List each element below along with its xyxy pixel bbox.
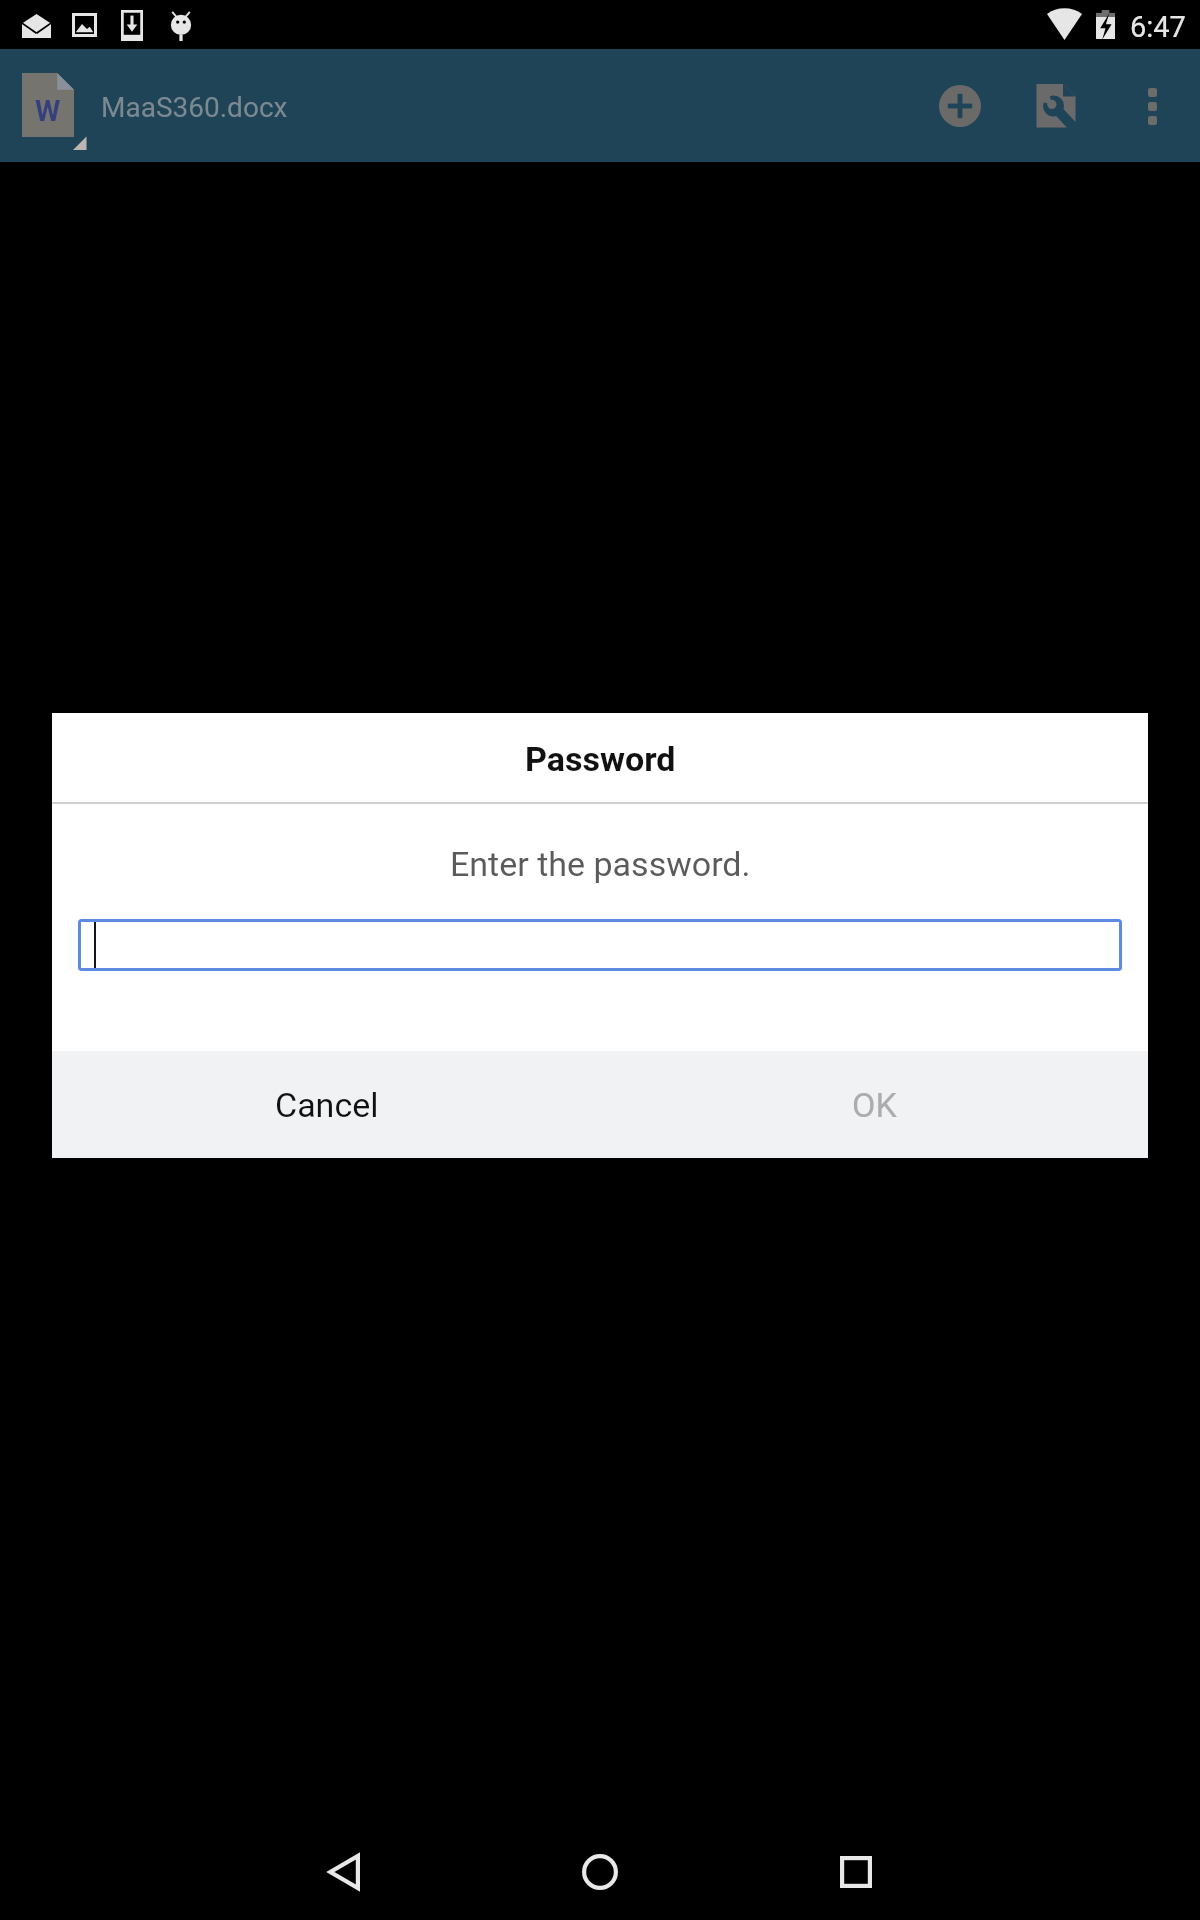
staticText: Enter the password. [450,844,751,884]
button[interactable]: Edit document [1008,50,1104,162]
button[interactable]: OK [772,1053,976,1161]
staticText: 6:47 [1130,10,1186,44]
button[interactable]: Password field [78,919,1122,971]
staticText: Cancel [275,1085,379,1125]
button[interactable]: More options [1104,58,1200,154]
button[interactable]: Back [295,1831,391,1913]
staticText: MaaS360.docx [101,91,288,124]
staticText: Password [525,739,676,779]
staticText: W [35,94,61,128]
button[interactable]: Recent apps [808,1831,904,1913]
button[interactable]: Add [912,58,1008,154]
button[interactable]: Home [552,1831,648,1913]
button[interactable]: W [8,49,308,162]
button[interactable]: Cancel [225,1053,429,1161]
staticText: OK [852,1085,897,1125]
